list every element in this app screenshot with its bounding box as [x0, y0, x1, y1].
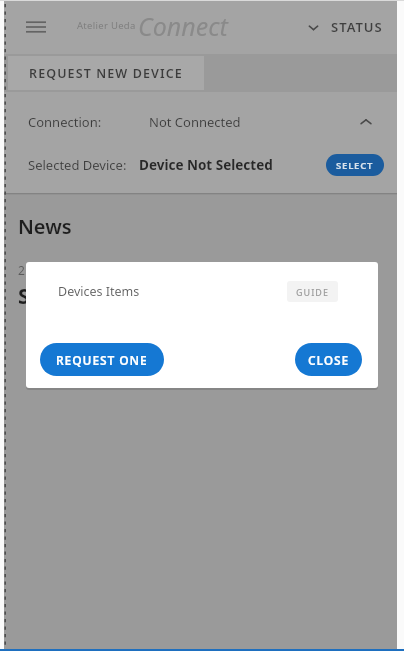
staticText: Devices Items — [58, 283, 140, 300]
button[interactable]: GUIDE — [287, 281, 338, 302]
staticText: Not Connected — [149, 113, 241, 131]
button[interactable]: Connection: — [4, 102, 397, 142]
staticText: CLOSE — [308, 352, 350, 368]
staticText: SELECT — [336, 159, 374, 172]
staticText: S — [18, 282, 30, 311]
staticText: Atelier Ueda — [77, 19, 136, 32]
staticText: Connection: — [28, 113, 102, 131]
button[interactable]: STATUS — [303, 10, 387, 44]
staticText: Device Not Selected — [139, 156, 273, 174]
button[interactable]: CLOSE — [295, 343, 362, 376]
staticText: STATUS — [331, 18, 383, 36]
staticText: REQUEST NEW DEVICE — [29, 65, 183, 82]
staticText: 2 — [18, 262, 25, 278]
button[interactable]: REQUEST NEW DEVICE — [8, 56, 204, 90]
staticText: REQUEST ONE — [56, 352, 148, 368]
button[interactable]: REQUEST ONE — [40, 343, 164, 376]
staticText: Connect — [138, 9, 228, 43]
button[interactable]: SELECT — [326, 154, 384, 176]
staticText: News — [18, 213, 72, 240]
staticText: GUIDE — [296, 286, 329, 298]
staticText: Selected Device: — [28, 156, 127, 174]
button[interactable]: Menu — [16, 7, 56, 47]
other: Collapse — [352, 108, 380, 136]
